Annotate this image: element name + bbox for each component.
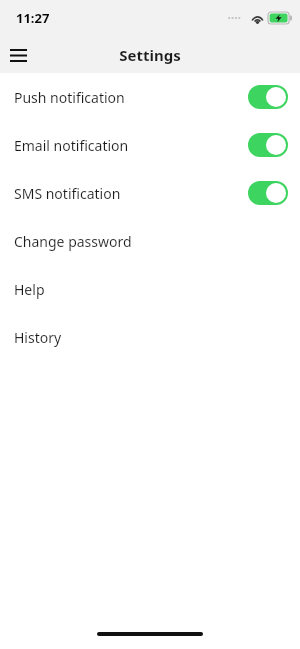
button[interactable]: Email notification [0,121,300,169]
button[interactable]: Help [0,265,300,313]
staticText: History [14,328,288,347]
button[interactable]: Open navigation menu [0,37,36,73]
staticText: SMS notification [14,184,248,203]
button[interactable]: Toggle, on [248,133,288,157]
staticText: Help [14,280,288,299]
button[interactable]: Change password [0,217,300,265]
staticText: Email notification [14,136,248,155]
button[interactable]: History [0,313,300,361]
button[interactable]: Toggle, on [248,181,288,205]
staticText: 11:27 [16,9,50,27]
button[interactable]: Push notification [0,73,300,121]
staticText: Settings [0,45,300,65]
button[interactable]: SMS notification [0,169,300,217]
staticText: Push notification [14,88,248,107]
button[interactable]: Toggle, on [248,85,288,109]
staticText: Change password [14,232,288,251]
